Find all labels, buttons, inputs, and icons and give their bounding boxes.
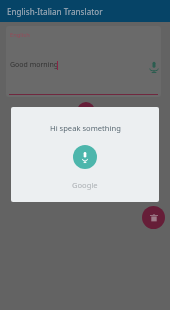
staticText: English-Italian Translator bbox=[7, 6, 103, 17]
button[interactable]: Delete bbox=[142, 206, 165, 229]
button[interactable]: English-Italian Translator bbox=[0, 0, 170, 22]
button[interactable]: Speak bbox=[77, 102, 95, 120]
staticText: English bbox=[10, 31, 30, 39]
staticText: Hi speak something bbox=[50, 123, 121, 133]
staticText: Good morning bbox=[10, 60, 59, 70]
button[interactable]: Record bbox=[73, 145, 97, 169]
staticText: Google bbox=[72, 180, 98, 190]
button[interactable]: Voice input bbox=[149, 61, 159, 73]
